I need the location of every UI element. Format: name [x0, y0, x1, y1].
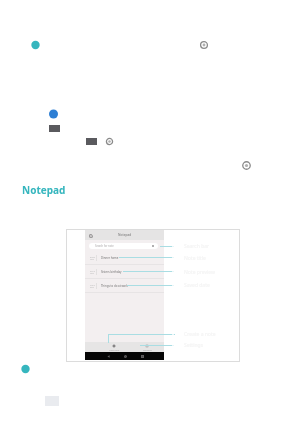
button[interactable]: Settings — [136, 342, 158, 352]
staticText: Create a note — [184, 331, 216, 338]
button[interactable]: New note — [103, 342, 125, 352]
staticText: Settings — [184, 342, 204, 349]
staticText: Note preview — [184, 269, 215, 276]
staticText: 9:12 AM — [90, 269, 96, 275]
button[interactable]: 8:45 AM — [85, 251, 164, 265]
staticText: Things to do at work — [101, 284, 128, 288]
staticText: 8:45 AM — [90, 255, 96, 261]
staticText: Dinner home — [101, 256, 119, 260]
button[interactable]: Home — [121, 352, 129, 360]
button[interactable]: 4:27 PM — [85, 279, 164, 293]
button[interactable]: Search for note — [89, 243, 158, 249]
staticText: Sisters birthday — [101, 270, 122, 274]
staticText: Settings — [143, 349, 152, 352]
staticText: Notepad — [22, 183, 66, 197]
staticText: Saved date — [184, 282, 210, 289]
staticText: Notepad — [118, 233, 132, 237]
button[interactable]: 9:12 AM — [85, 265, 164, 279]
staticText: 4:27 PM — [90, 283, 96, 289]
button[interactable]: Back — [104, 352, 112, 360]
staticText: New note — [109, 349, 120, 352]
button[interactable]: Notes — [89, 234, 93, 238]
button[interactable]: Recents — [138, 352, 146, 360]
staticText: Search bar — [184, 243, 210, 250]
staticText: Search for note — [95, 244, 114, 248]
staticText: Note title — [184, 255, 206, 262]
